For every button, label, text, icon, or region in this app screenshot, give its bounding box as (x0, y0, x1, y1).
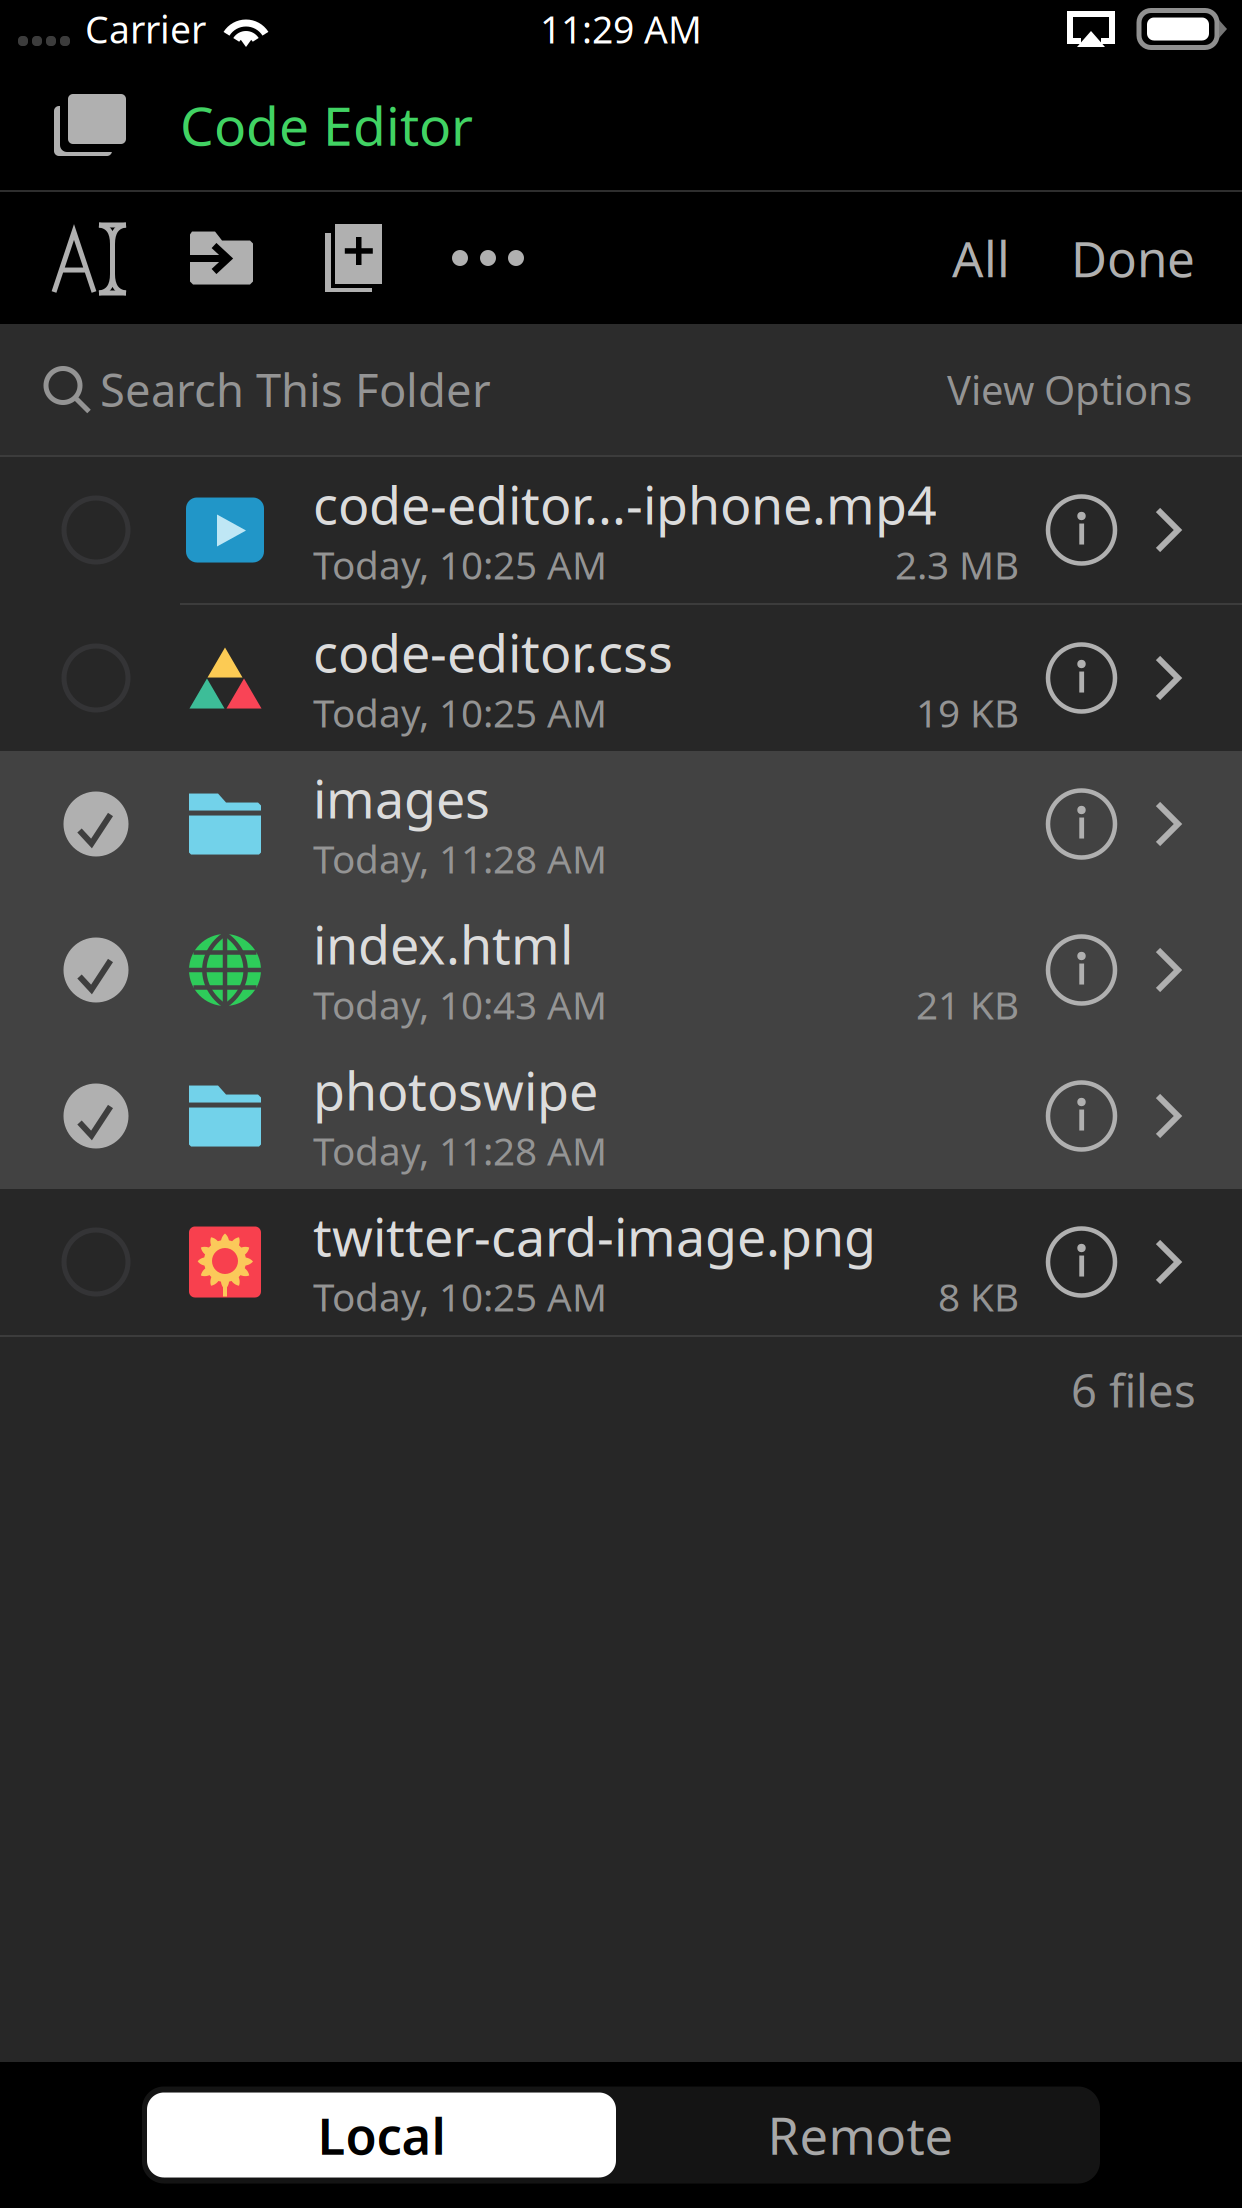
button[interactable]: Local (147, 2092, 616, 2177)
button[interactable]: code-editor.css (0, 605, 1242, 751)
button[interactable]: More (424, 192, 554, 324)
staticText: code-editor.css (313, 618, 673, 687)
staticText: All (952, 225, 1010, 291)
staticText: Today, 10:25 AM (313, 539, 607, 590)
button[interactable]: Documents (0, 58, 140, 192)
button[interactable]: images (0, 751, 1242, 897)
staticText: View Options (947, 363, 1192, 416)
button[interactable]: Remote (626, 2092, 1095, 2177)
staticText: 19 KB (916, 687, 1019, 738)
button[interactable]: Text style (0, 192, 164, 324)
button[interactable]: photoswipe (0, 1043, 1242, 1189)
staticText: index.html (313, 910, 573, 979)
staticText: Code Editor (180, 90, 473, 160)
staticText: code-editor...-iphone.mp4 (313, 470, 937, 539)
staticText: 11:29 AM (540, 4, 702, 54)
button[interactable]: Move to folder (164, 192, 279, 324)
button[interactable]: View Options (947, 324, 1242, 455)
staticText: Local (317, 2101, 445, 2169)
staticText: Today, 11:28 AM (313, 833, 607, 884)
button[interactable]: All (928, 192, 1045, 324)
staticText: Remote (767, 2101, 953, 2169)
staticText: 2.3 MB (895, 539, 1019, 590)
staticText: Carrier (85, 4, 206, 54)
staticText: photoswipe (313, 1056, 598, 1125)
staticText: 6 files (1071, 1360, 1196, 1420)
staticText: Today, 10:25 AM (313, 1271, 607, 1322)
staticText: 21 KB (916, 979, 1019, 1030)
staticText: Today, 10:25 AM (313, 687, 607, 738)
staticText: images (313, 764, 490, 833)
button[interactable]: twitter-card-image.png (0, 1189, 1242, 1335)
staticText: twitter-card-image.png (313, 1202, 876, 1271)
button[interactable]: index.html (0, 897, 1242, 1043)
staticText: 8 KB (938, 1271, 1019, 1322)
button[interactable]: Done (1045, 192, 1242, 324)
button[interactable]: New file (279, 192, 424, 324)
button[interactable]: code-editor...-iphone.mp4 (0, 457, 1242, 603)
staticText: Today, 10:43 AM (313, 979, 607, 1030)
staticText: Search This Folder (100, 359, 491, 420)
staticText: Today, 11:28 AM (313, 1125, 607, 1176)
staticText: Done (1071, 225, 1195, 291)
